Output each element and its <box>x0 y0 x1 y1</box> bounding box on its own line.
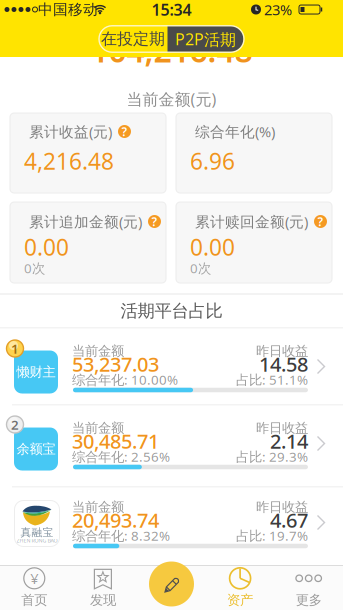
button[interactable]: 帮助 <box>118 125 131 138</box>
button[interactable]: 帮助 <box>314 215 327 228</box>
staticText: 20,493.74 <box>72 507 159 533</box>
staticText: 104,216.48 <box>90 29 252 71</box>
staticText: 当前金额 <box>72 343 124 359</box>
button[interactable]: 资产 <box>206 566 274 610</box>
staticText: 资产 <box>227 592 253 608</box>
staticText: 0次 <box>190 259 211 277</box>
button[interactable]: ¥ <box>0 566 68 610</box>
button[interactable]: P2P活期 <box>167 26 243 52</box>
staticText: 0次 <box>24 259 45 277</box>
button[interactable]: 帮助 <box>148 215 161 228</box>
staticText: ¥ <box>30 569 38 588</box>
staticText: 当前金额 <box>72 499 124 515</box>
staticText: 昨日收益 <box>256 420 308 436</box>
staticText: 14.58 <box>259 351 308 377</box>
staticText: 中国移动 <box>38 0 98 18</box>
staticText: ZHEN RONG BAO <box>16 537 57 544</box>
button[interactable]: 发现 <box>69 566 137 610</box>
staticText: 首页 <box>21 592 47 608</box>
staticText: 活期平台占比 <box>120 300 222 322</box>
staticText: 占比: 19.7% <box>236 527 308 544</box>
staticText: 累计收益(元) <box>29 122 112 141</box>
staticText: 占比: 51.1% <box>236 371 308 388</box>
staticText: 15:34 <box>151 0 191 20</box>
staticText: 30,485.71 <box>72 428 159 454</box>
staticText: P2P活期 <box>175 28 236 50</box>
staticText: 0.00 <box>24 232 69 262</box>
staticText: 懒财主 <box>16 364 55 380</box>
button[interactable]: 在投定期 <box>99 26 167 52</box>
staticText: 累计赎回金额(元) <box>195 212 308 231</box>
staticText: 23% <box>264 0 292 19</box>
staticText: 综合年化(%) <box>195 122 275 141</box>
button[interactable]: 当前金额 <box>0 487 343 565</box>
staticText: 累计追加金额(元) <box>29 212 142 231</box>
button[interactable]: 更多 <box>275 566 343 610</box>
staticText: 53,237.03 <box>72 351 159 377</box>
staticText: 0.00 <box>190 232 235 262</box>
staticText: ? <box>317 213 323 229</box>
staticText: 综合年化: 8.32% <box>72 527 170 544</box>
staticText: ? <box>151 213 157 229</box>
staticText: 1 <box>11 340 19 357</box>
staticText: 综合年化: 2.56% <box>72 448 170 465</box>
staticText: 发现 <box>90 592 116 608</box>
staticText: 综合年化: 10.00% <box>72 371 178 388</box>
staticText: 昨日收益 <box>256 499 308 515</box>
staticText: 2.14 <box>270 428 308 454</box>
button[interactable]: 记账 <box>149 561 194 606</box>
staticText: 2 <box>11 416 19 433</box>
staticText: ? <box>121 123 127 139</box>
button[interactable]: 当前金额 <box>0 328 343 404</box>
staticText: 当前金额 <box>72 420 124 436</box>
button[interactable]: 当前金额 <box>0 405 343 486</box>
staticText: 昨日收益 <box>256 343 308 359</box>
staticText: 占比: 29.3% <box>236 448 308 465</box>
staticText: 当前金额(元) <box>126 88 216 110</box>
staticText: 在投定期 <box>101 29 165 49</box>
staticText: 6.96 <box>190 146 235 176</box>
staticText: 余额宝 <box>16 441 55 457</box>
staticText: 更多 <box>296 592 322 608</box>
staticText: 4.67 <box>270 507 308 533</box>
staticText: 真融宝 <box>20 526 53 539</box>
staticText: 4,216.48 <box>24 146 114 176</box>
